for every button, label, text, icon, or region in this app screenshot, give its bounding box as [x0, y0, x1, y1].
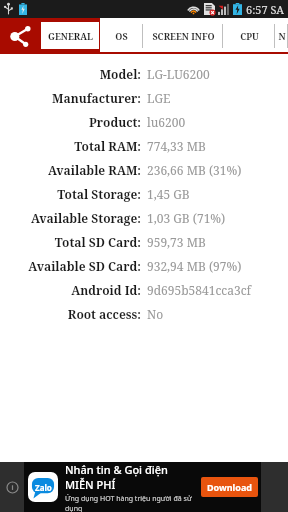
- button[interactable]: Total RAM:: [0, 134, 288, 158]
- button[interactable]: CPU: [223, 18, 275, 54]
- staticText: LG-LU6200: [147, 66, 210, 82]
- staticText: 1,03 GB (71%): [147, 210, 226, 226]
- button[interactable]: Available RAM:: [0, 158, 288, 182]
- staticText: Product:: [89, 114, 141, 130]
- staticText: Total Storage:: [57, 186, 141, 202]
- staticText: 959,73 MB: [147, 234, 206, 250]
- staticText: 236,66 MB (31%): [147, 162, 242, 178]
- button[interactable]: GENERAL: [40, 18, 100, 54]
- staticText: Ứng dụng HOT hàng triệu người đã sử dụng: [65, 494, 197, 512]
- staticText: 932,94 MB (97%): [147, 258, 242, 274]
- staticText: 6:57 SA: [246, 2, 284, 17]
- staticText: Download: [207, 481, 252, 493]
- staticText: 774,33 MB: [147, 138, 206, 154]
- staticText: Android Id:: [71, 282, 141, 298]
- button[interactable]: Available SD Card:: [0, 254, 288, 278]
- staticText: SCREEN INFO: [152, 30, 215, 42]
- button[interactable]: N: [275, 18, 288, 54]
- staticText: 9d695b5841cca3cf: [147, 282, 252, 298]
- button[interactable]: Zalo: [28, 462, 258, 512]
- button[interactable]: Total Storage:: [0, 182, 288, 206]
- staticText: OS: [115, 30, 128, 42]
- button[interactable]: Product:: [0, 110, 288, 134]
- staticText: lu6200: [147, 114, 186, 130]
- staticText: Root access:: [67, 306, 141, 322]
- staticText: Zalo: [35, 482, 52, 493]
- staticText: GENERAL: [48, 30, 93, 42]
- staticText: Total SD Card:: [54, 234, 141, 250]
- button[interactable]: Model:: [0, 62, 288, 86]
- staticText: Nhắn tin & Gọi điện MIỄN PHÍ: [65, 462, 197, 492]
- button[interactable]: Available Storage:: [0, 206, 288, 230]
- button[interactable]: OS: [100, 18, 143, 54]
- button[interactable]: Download: [207, 481, 252, 493]
- staticText: Available SD Card:: [28, 258, 141, 274]
- button[interactable]: Android Id:: [0, 278, 288, 302]
- staticText: Model:: [99, 66, 141, 82]
- button[interactable]: Total SD Card:: [0, 230, 288, 254]
- button[interactable]: Manufacturer:: [0, 86, 288, 110]
- button[interactable]: Root access:: [0, 302, 288, 326]
- staticText: LGE: [147, 90, 171, 106]
- staticText: CPU: [240, 30, 259, 42]
- staticText: Total RAM:: [74, 138, 141, 154]
- button[interactable]: App logo: [0, 18, 40, 54]
- staticText: Manufacturer:: [52, 90, 141, 106]
- staticText: Available RAM:: [47, 162, 141, 178]
- staticText: 1,45 GB: [147, 186, 190, 202]
- button[interactable]: SCREEN INFO: [143, 18, 223, 54]
- staticText: GENERAL: [48, 30, 93, 42]
- staticText: No: [147, 306, 164, 322]
- staticText: N: [278, 30, 286, 42]
- staticText: Available Storage:: [30, 210, 141, 226]
